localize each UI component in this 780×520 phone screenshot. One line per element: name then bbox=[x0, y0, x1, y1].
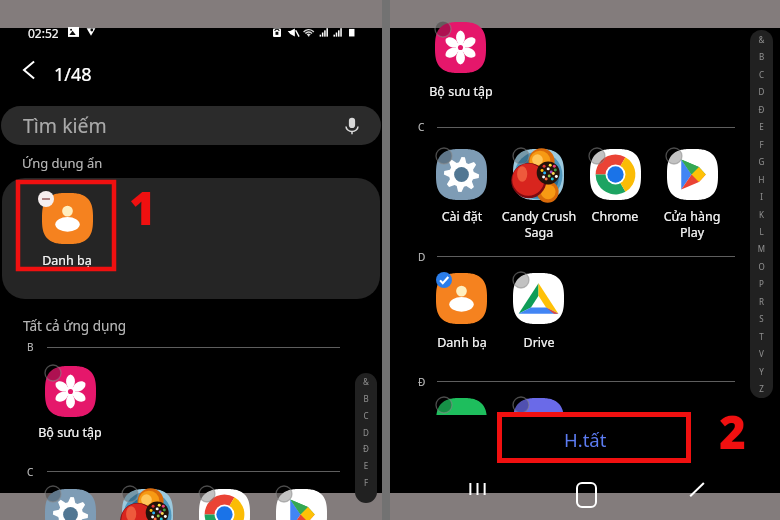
staticText: Z bbox=[750, 383, 773, 394]
button[interactable]: Candy Crush Saga bbox=[513, 149, 564, 200]
staticText: T bbox=[750, 331, 773, 342]
staticText: B bbox=[27, 340, 34, 354]
staticText: Bộ sưu tập bbox=[27, 424, 113, 441]
button[interactable]: Bộ sưu tập bbox=[45, 366, 96, 417]
staticText: F bbox=[355, 477, 377, 488]
staticText: B bbox=[750, 51, 773, 62]
staticText: Tất cả ứng dụng bbox=[23, 316, 127, 335]
button[interactable]: Danh bạ bbox=[436, 273, 487, 324]
staticText: H bbox=[750, 174, 773, 185]
staticText: L bbox=[750, 226, 773, 237]
staticText: Đ bbox=[750, 104, 773, 115]
staticText: C bbox=[27, 465, 34, 479]
staticText: D bbox=[750, 86, 773, 97]
button[interactable]: Alphabet index bbox=[750, 30, 773, 398]
staticText: Y bbox=[750, 366, 773, 377]
staticText: Cửa hàng Play bbox=[649, 208, 735, 241]
staticText: E bbox=[750, 121, 773, 132]
staticText: 02:52 bbox=[28, 25, 59, 41]
staticText: Drive bbox=[496, 334, 582, 351]
button[interactable]: Recent apps bbox=[467, 483, 488, 495]
staticText: C bbox=[418, 120, 425, 134]
staticText: E bbox=[355, 460, 377, 471]
staticText: Chrome bbox=[572, 208, 658, 225]
staticText: H.tất bbox=[564, 427, 607, 452]
button[interactable]: Back bbox=[686, 483, 707, 495]
staticText: R bbox=[750, 296, 773, 307]
button[interactable]: Danh bạ bbox=[42, 193, 93, 244]
staticText: C bbox=[750, 69, 773, 80]
staticText: Đ bbox=[418, 375, 426, 389]
staticText: Danh bạ bbox=[24, 252, 110, 269]
staticText: Tìm kiếm bbox=[23, 112, 107, 139]
staticText: Bộ sưu tập bbox=[418, 83, 504, 100]
button[interactable]: Chrome bbox=[590, 149, 641, 200]
staticText: F bbox=[750, 139, 773, 150]
staticText: Cài đặt bbox=[419, 208, 505, 225]
staticText: Đ bbox=[355, 443, 377, 454]
staticText: Ứng dụng ẩn bbox=[22, 154, 103, 172]
button[interactable]: Cài đặt bbox=[436, 149, 487, 200]
staticText: 2 bbox=[719, 400, 746, 463]
staticText: S bbox=[750, 313, 773, 324]
staticText: Danh bạ bbox=[419, 334, 505, 351]
staticText: D bbox=[418, 250, 426, 264]
staticText: K bbox=[750, 209, 773, 220]
staticText: 1/48 bbox=[54, 62, 92, 87]
staticText: O bbox=[750, 261, 773, 272]
staticText: & bbox=[750, 34, 773, 45]
staticText: 1 bbox=[129, 176, 156, 239]
button[interactable]: Alphabet index bbox=[355, 373, 377, 503]
button[interactable]: H.tất bbox=[488, 415, 682, 464]
button[interactable]: Back bbox=[18, 58, 42, 82]
staticText: B bbox=[355, 393, 377, 404]
button[interactable]: Tìm kiếm bbox=[1, 106, 381, 145]
button[interactable]: Cửa hàng Play bbox=[667, 149, 718, 200]
button[interactable]: Home bbox=[576, 483, 597, 495]
staticText: Candy Crush Saga bbox=[496, 208, 582, 241]
staticText: I bbox=[750, 191, 773, 202]
button[interactable]: Drive bbox=[513, 273, 564, 324]
staticText: & bbox=[355, 376, 377, 387]
staticText: C bbox=[355, 410, 377, 421]
staticText: M bbox=[750, 243, 773, 254]
staticText: V bbox=[750, 348, 773, 359]
staticText: P bbox=[750, 278, 773, 289]
button[interactable]: Voice search bbox=[339, 113, 365, 139]
staticText: G bbox=[750, 156, 773, 167]
staticText: D bbox=[355, 427, 377, 438]
